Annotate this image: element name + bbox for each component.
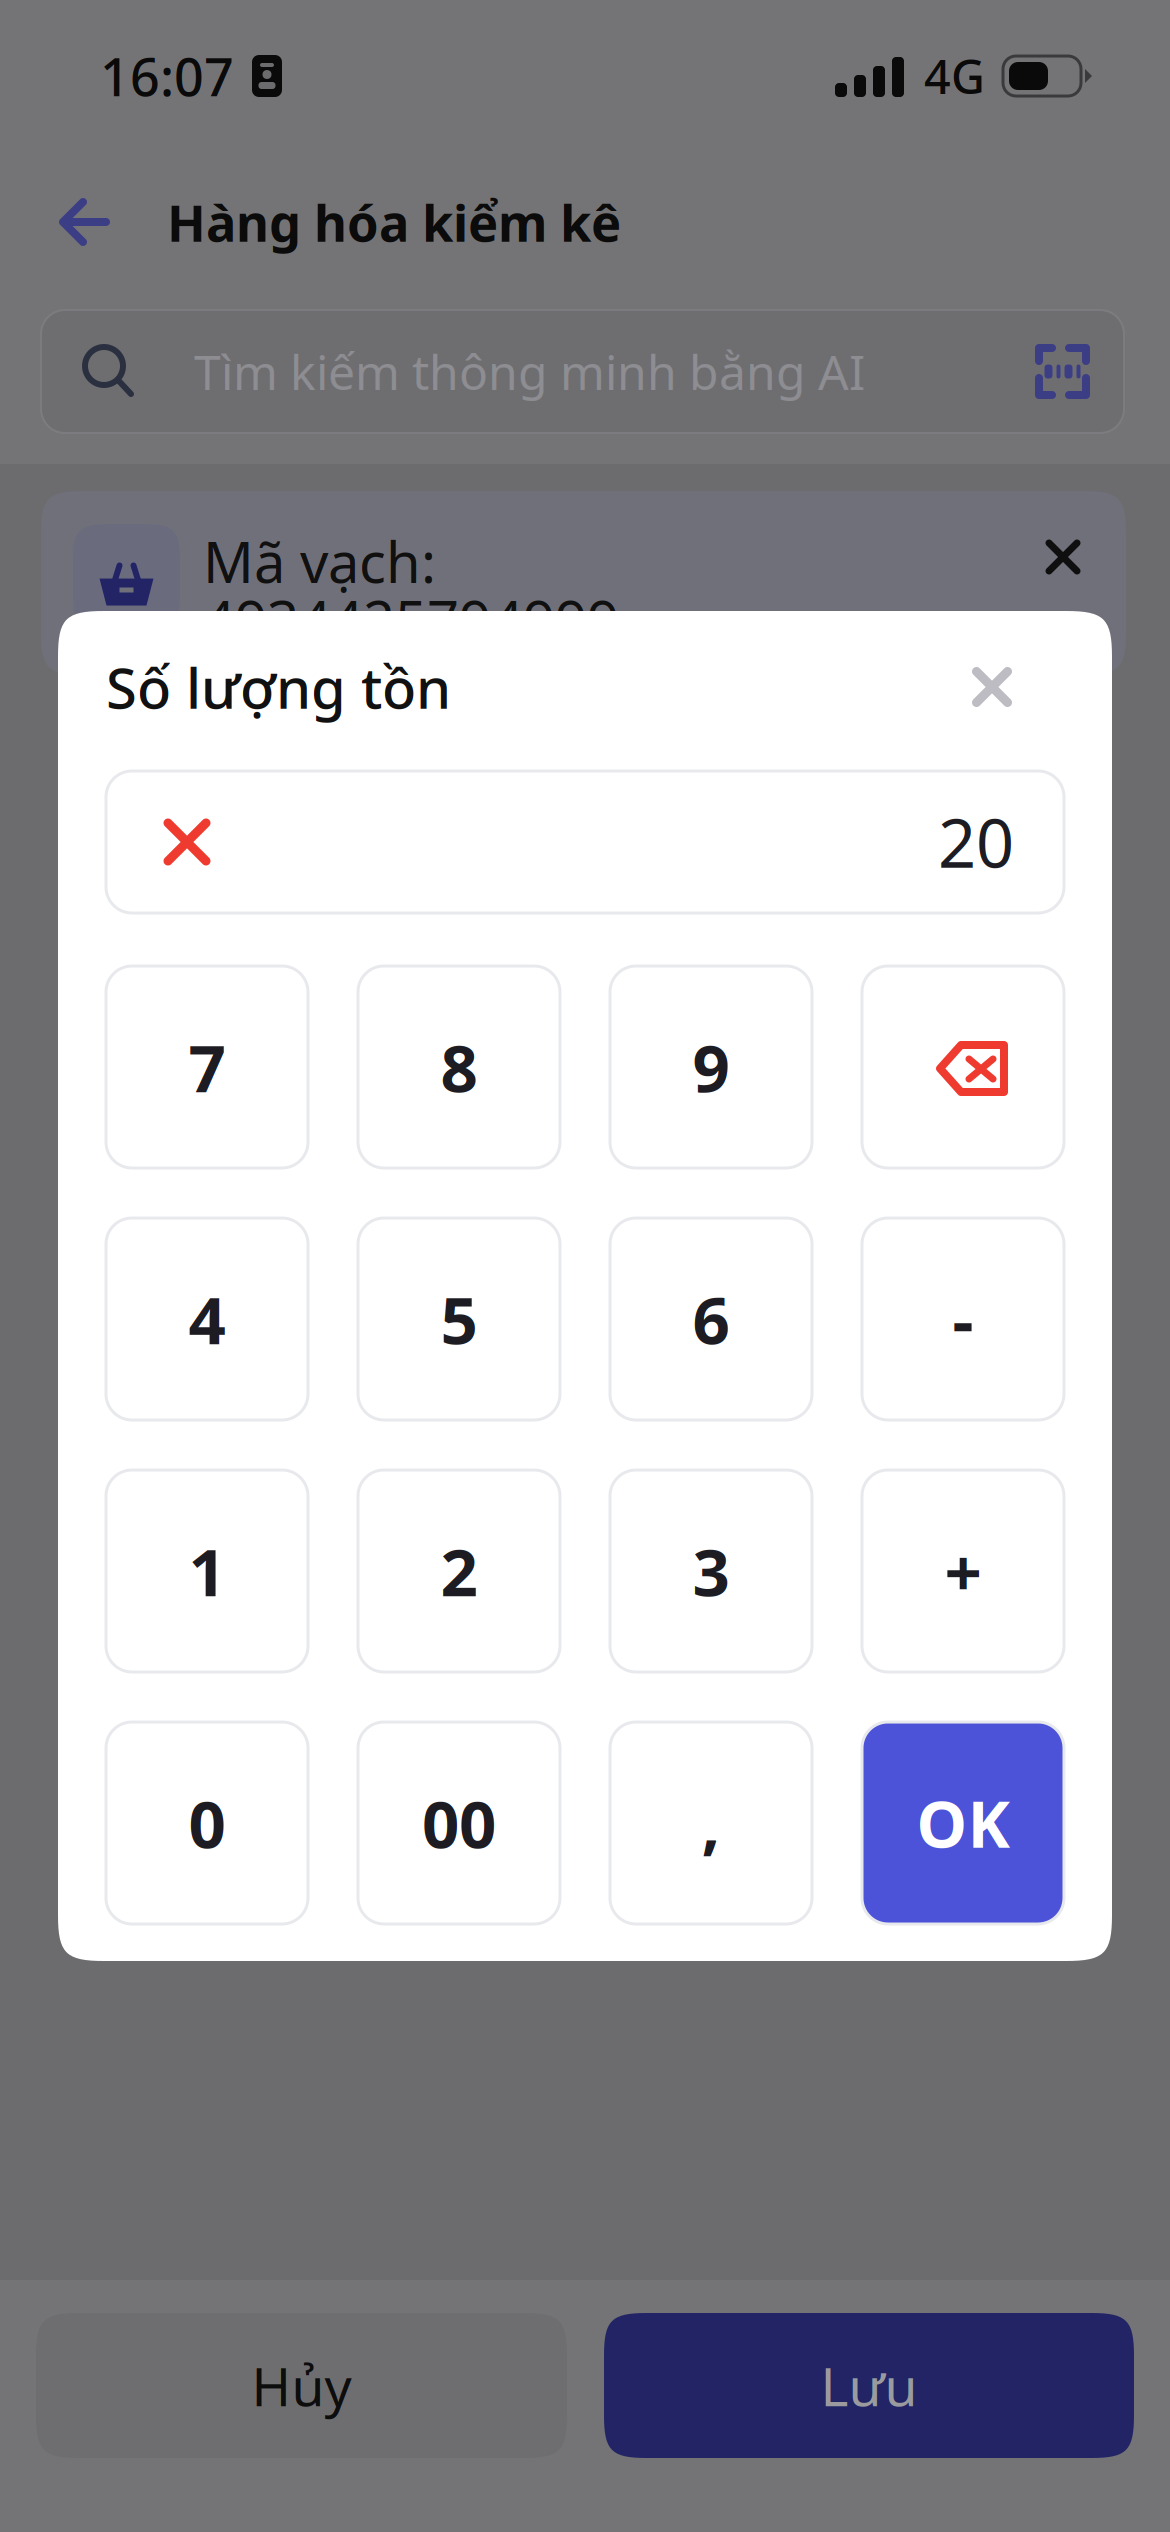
staticText: Hủy <box>251 2350 351 2421</box>
staticText: 7 <box>188 1024 225 1110</box>
staticText: 00 <box>422 1780 496 1866</box>
staticText: Số lượng tồn <box>106 650 451 724</box>
button[interactable]: 00 <box>358 1722 560 1924</box>
staticText: 16:07 <box>100 41 234 111</box>
button[interactable]: , <box>610 1722 812 1924</box>
button[interactable]: + <box>862 1470 1064 1672</box>
staticText: - <box>952 1276 973 1362</box>
button[interactable]: - <box>862 1218 1064 1420</box>
button[interactable]: Back <box>40 175 128 269</box>
button[interactable] <box>862 966 1064 1168</box>
button[interactable]: OK <box>862 1722 1064 1924</box>
staticText: 0 <box>188 1780 225 1866</box>
button[interactable]: 9 <box>610 966 812 1168</box>
button[interactable]: 3 <box>610 1470 812 1672</box>
button[interactable]: Close <box>972 649 1064 725</box>
staticText: , <box>701 1780 720 1866</box>
button[interactable]: 4 <box>106 1218 308 1420</box>
button[interactable]: 2 <box>358 1470 560 1672</box>
staticText: + <box>944 1528 981 1614</box>
button[interactable]: Lưu <box>604 2313 1134 2458</box>
staticText: 4 <box>188 1276 225 1362</box>
staticText: 2 <box>440 1528 477 1614</box>
staticText: 5 <box>440 1276 477 1362</box>
button[interactable]: Clear value <box>150 805 224 879</box>
button[interactable]: 7 <box>106 966 308 1168</box>
staticText: 20 <box>938 798 1014 886</box>
button[interactable]: Remove item <box>1030 524 1096 590</box>
button[interactable]: 8 <box>358 966 560 1168</box>
button[interactable]: 5 <box>358 1218 560 1420</box>
staticText: Tìm kiếm thông minh bằng AI <box>194 340 865 403</box>
staticText: OK <box>916 1780 1009 1865</box>
staticText: Mã vạch: <box>203 524 436 598</box>
staticText: 4934425794999 <box>203 583 619 657</box>
button[interactable]: 6 <box>610 1218 812 1420</box>
staticText: 3 <box>692 1528 729 1614</box>
staticText: 1 <box>188 1528 225 1614</box>
staticText: Hàng hóa kiểm kê <box>167 188 621 256</box>
staticText: Lưu <box>820 2350 917 2421</box>
button[interactable]: 0 <box>106 1722 308 1924</box>
button[interactable]: 1 <box>106 1470 308 1672</box>
staticText: 4G <box>924 45 985 107</box>
button[interactable]: Scan barcode <box>1035 344 1090 399</box>
staticText: 6 <box>692 1276 729 1362</box>
staticText: 9 <box>692 1024 729 1110</box>
button[interactable]: Hủy <box>36 2313 567 2458</box>
staticText: 8 <box>440 1024 477 1110</box>
